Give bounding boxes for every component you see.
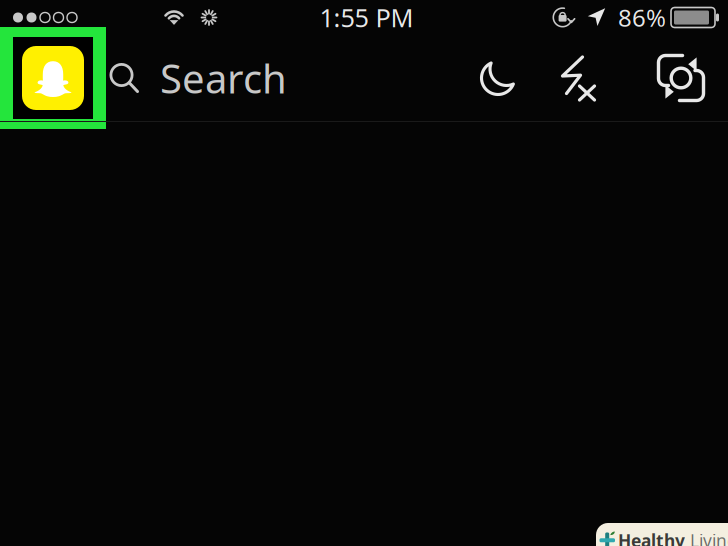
button[interactable]: Flip camera (652, 35, 710, 121)
staticText: 86% (618, 2, 666, 33)
staticText: Healthy (618, 529, 685, 546)
button[interactable]: Search (106, 35, 287, 121)
button[interactable]: Snapchat (0, 27, 106, 129)
staticText: Search (160, 51, 287, 104)
button[interactable]: Flash off (552, 35, 604, 121)
button[interactable]: Night mode (467, 35, 529, 121)
staticText: Living (685, 529, 728, 546)
staticText: 1:55 PM (319, 1, 413, 34)
